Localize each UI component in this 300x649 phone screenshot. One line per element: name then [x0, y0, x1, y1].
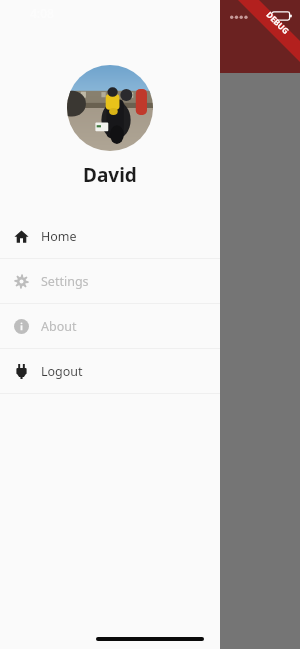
button[interactable]: About — [0, 304, 220, 348]
staticText: Settings — [41, 273, 89, 290]
button[interactable]: Settings — [0, 259, 220, 303]
button[interactable]: Home — [0, 214, 220, 258]
staticText: DEBUG — [264, 9, 292, 36]
button[interactable]: Profile photo — [67, 65, 153, 151]
staticText: About — [41, 318, 77, 335]
staticText: Home — [41, 228, 77, 245]
staticText: David — [83, 162, 137, 188]
button[interactable]: Logout — [0, 349, 220, 393]
staticText: Logout — [41, 363, 83, 380]
